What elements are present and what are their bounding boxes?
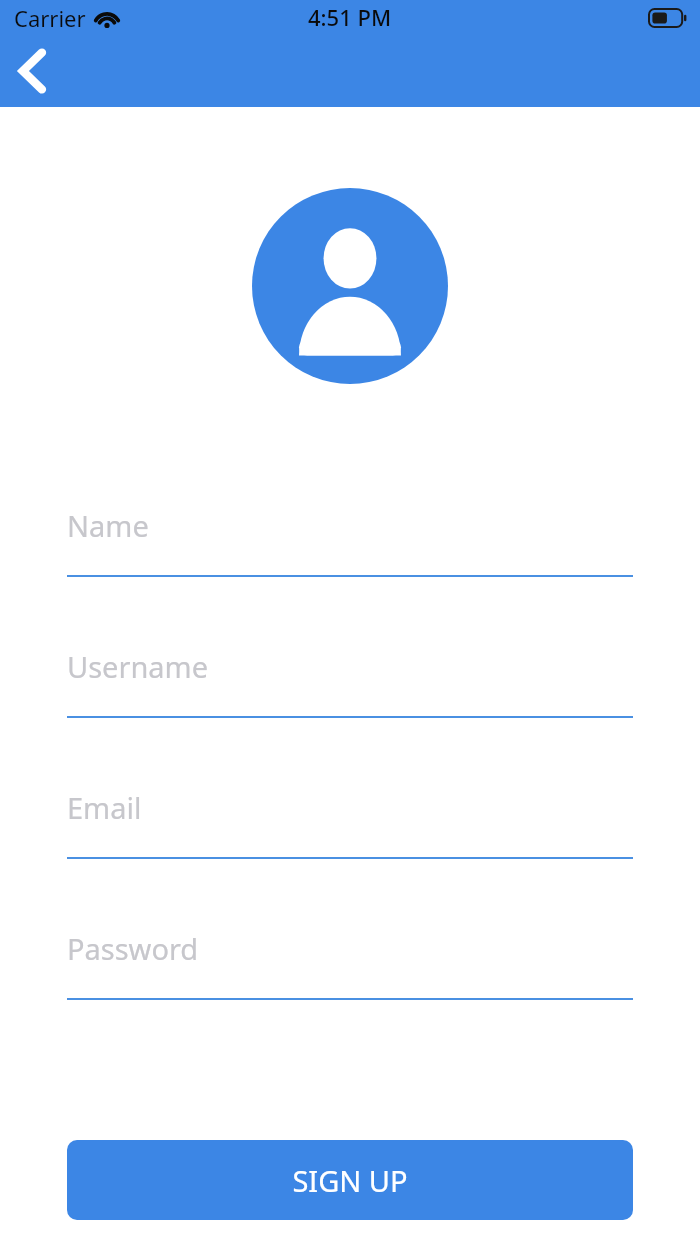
staticText: Name xyxy=(67,506,149,545)
button[interactable]: SIGN UP xyxy=(67,1140,633,1220)
button[interactable]: Username xyxy=(67,647,633,718)
button[interactable]: Password xyxy=(67,929,633,1000)
button[interactable]: Name xyxy=(67,506,633,577)
button[interactable]: Email xyxy=(67,788,633,859)
staticText: Carrier xyxy=(14,3,86,33)
staticText: Password xyxy=(67,929,199,968)
staticText: Username xyxy=(67,647,209,686)
staticText: SIGN UP xyxy=(292,1161,408,1200)
button[interactable]: Back xyxy=(0,38,66,104)
staticText: Email xyxy=(67,788,142,827)
staticText: 4:51 PM xyxy=(308,2,392,32)
